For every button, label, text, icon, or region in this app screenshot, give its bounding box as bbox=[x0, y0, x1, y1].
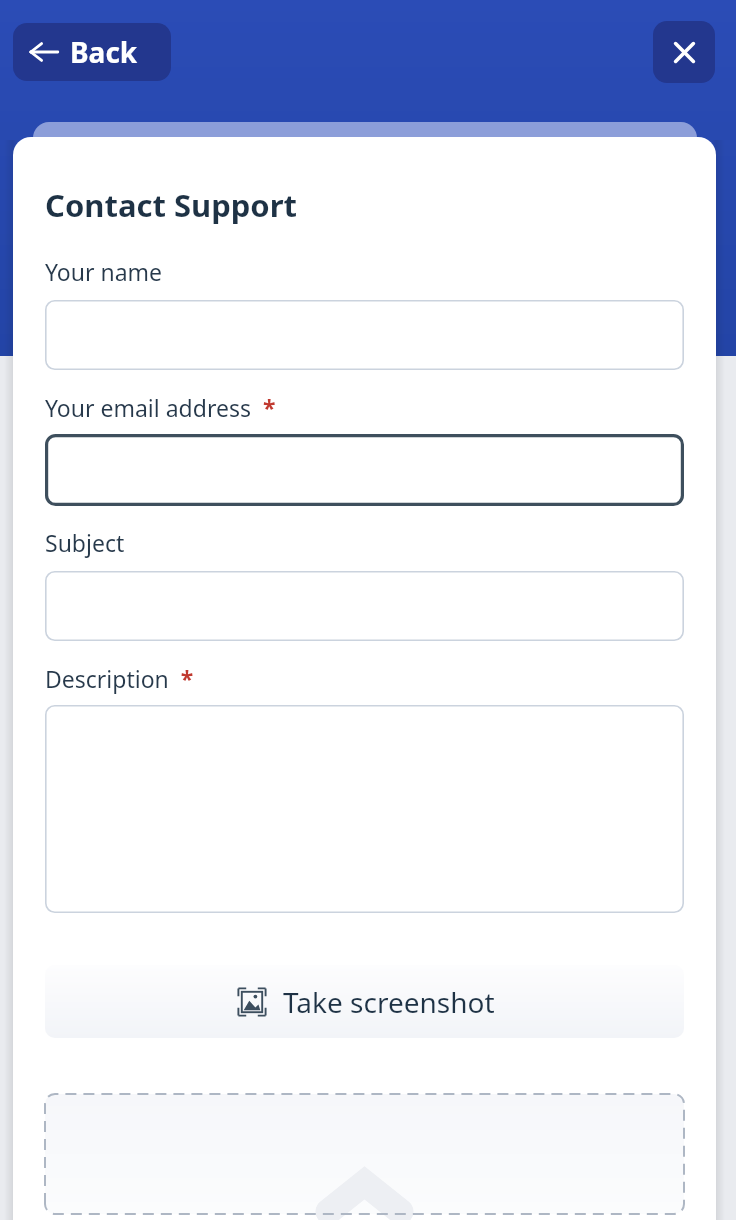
button[interactable]: Close bbox=[653, 21, 715, 83]
button[interactable]: Take screenshot bbox=[45, 965, 684, 1038]
staticText: Subject bbox=[45, 527, 125, 558]
staticText: Your email address * bbox=[45, 392, 276, 423]
staticText: Contact Support bbox=[45, 184, 298, 226]
button[interactable]: Upload attachment bbox=[45, 1094, 684, 1214]
button[interactable]: Back bbox=[13, 23, 171, 81]
staticText: Description * bbox=[45, 663, 194, 694]
button[interactable] bbox=[45, 571, 684, 641]
staticText: Back bbox=[70, 33, 138, 71]
staticText: Your name bbox=[45, 256, 163, 287]
staticText: Take screenshot bbox=[283, 983, 495, 1021]
button[interactable] bbox=[45, 300, 684, 370]
button[interactable] bbox=[45, 705, 684, 913]
button[interactable] bbox=[45, 434, 684, 506]
